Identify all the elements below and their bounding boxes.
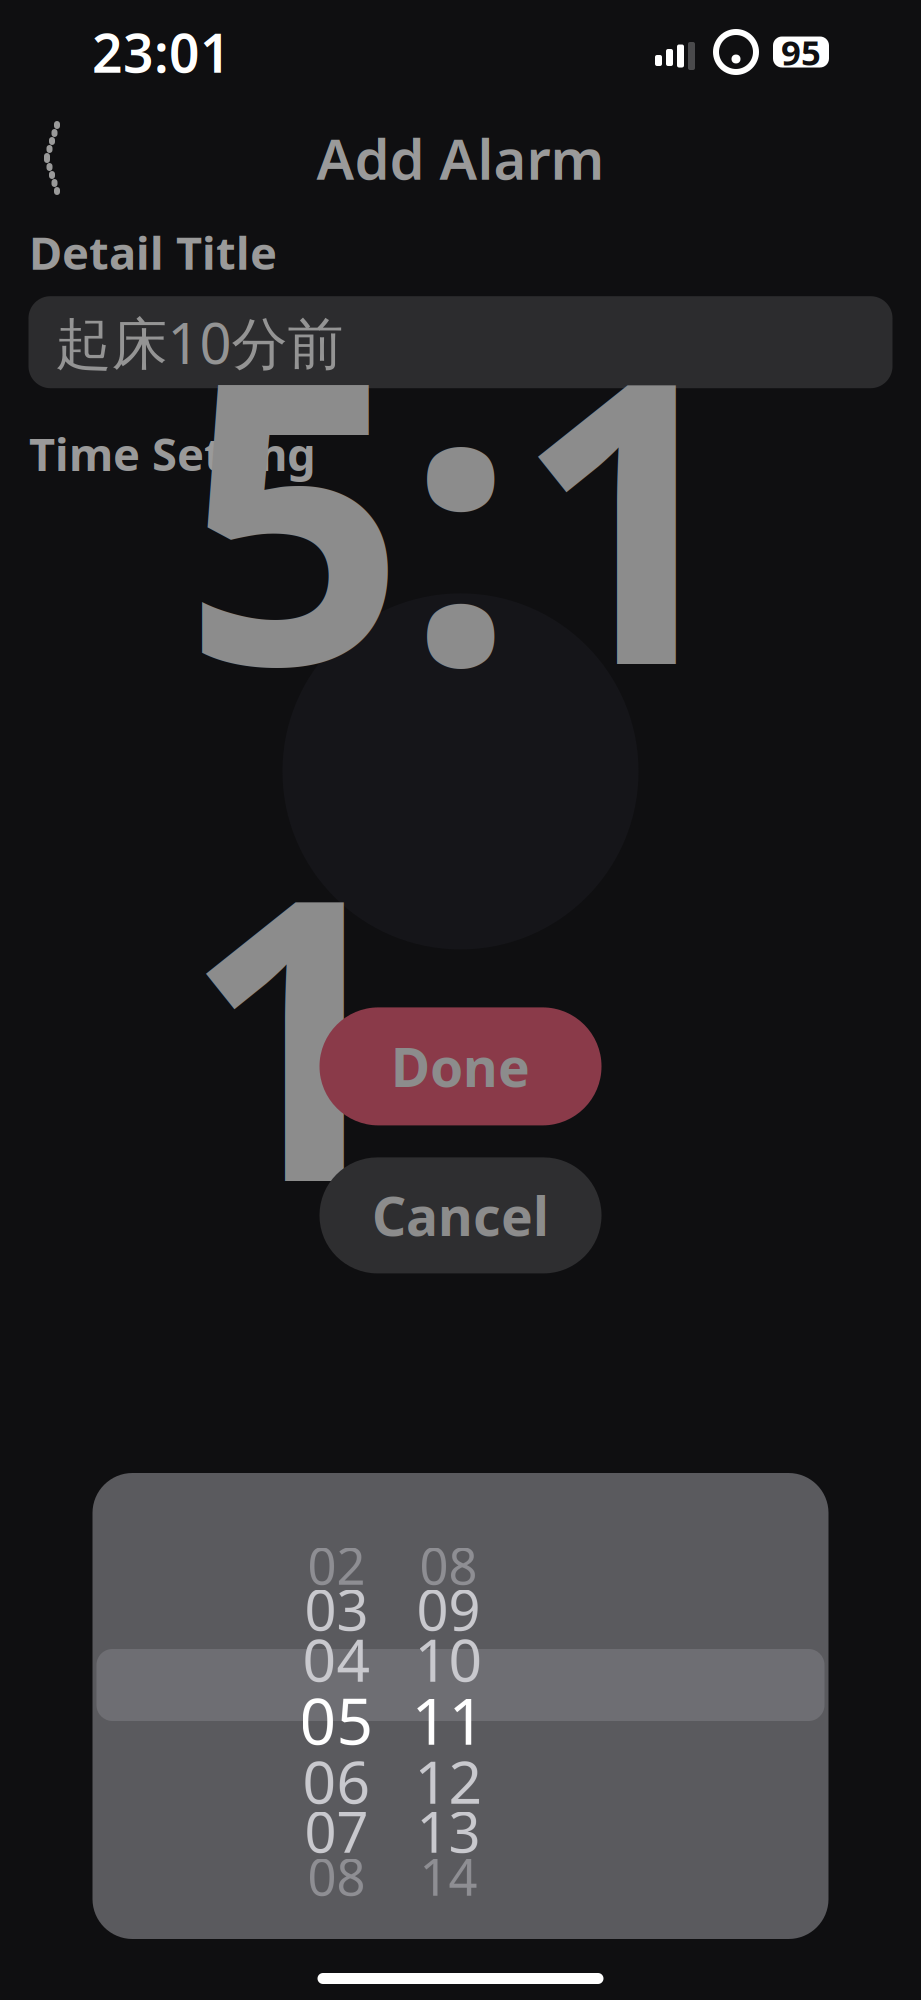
button[interactable]: Back	[12, 118, 88, 198]
staticText: 05	[299, 1677, 373, 1762]
button[interactable]: Cancel	[319, 1157, 601, 1273]
staticText: Detail Title	[29, 222, 277, 282]
staticText: 23:01	[92, 17, 231, 87]
staticText: 5:11	[183, 254, 738, 1288]
staticText: 起床10分前	[55, 305, 343, 379]
staticText: 08	[419, 1531, 477, 1599]
staticText: Time Setting	[29, 423, 316, 483]
staticText: 04	[302, 1620, 370, 1698]
staticText: 02	[307, 1531, 365, 1599]
staticText: 10	[414, 1620, 482, 1698]
staticText: 08	[307, 1842, 365, 1910]
staticText: 06	[302, 1742, 370, 1820]
staticText: Add Alarm	[316, 121, 604, 195]
button[interactable]: 起床10分前	[28, 296, 892, 388]
button[interactable]: Done	[319, 1007, 601, 1125]
staticText: 07	[304, 1794, 368, 1868]
staticText: Done	[391, 1031, 530, 1102]
staticText: 14	[419, 1842, 477, 1910]
staticText: 12	[414, 1742, 482, 1820]
staticText: 95	[781, 29, 821, 75]
staticText: 13	[416, 1794, 480, 1868]
staticText: 09	[416, 1572, 480, 1646]
staticText: 03	[304, 1572, 368, 1646]
staticText: 11	[411, 1677, 485, 1762]
staticText: Cancel	[372, 1180, 549, 1251]
